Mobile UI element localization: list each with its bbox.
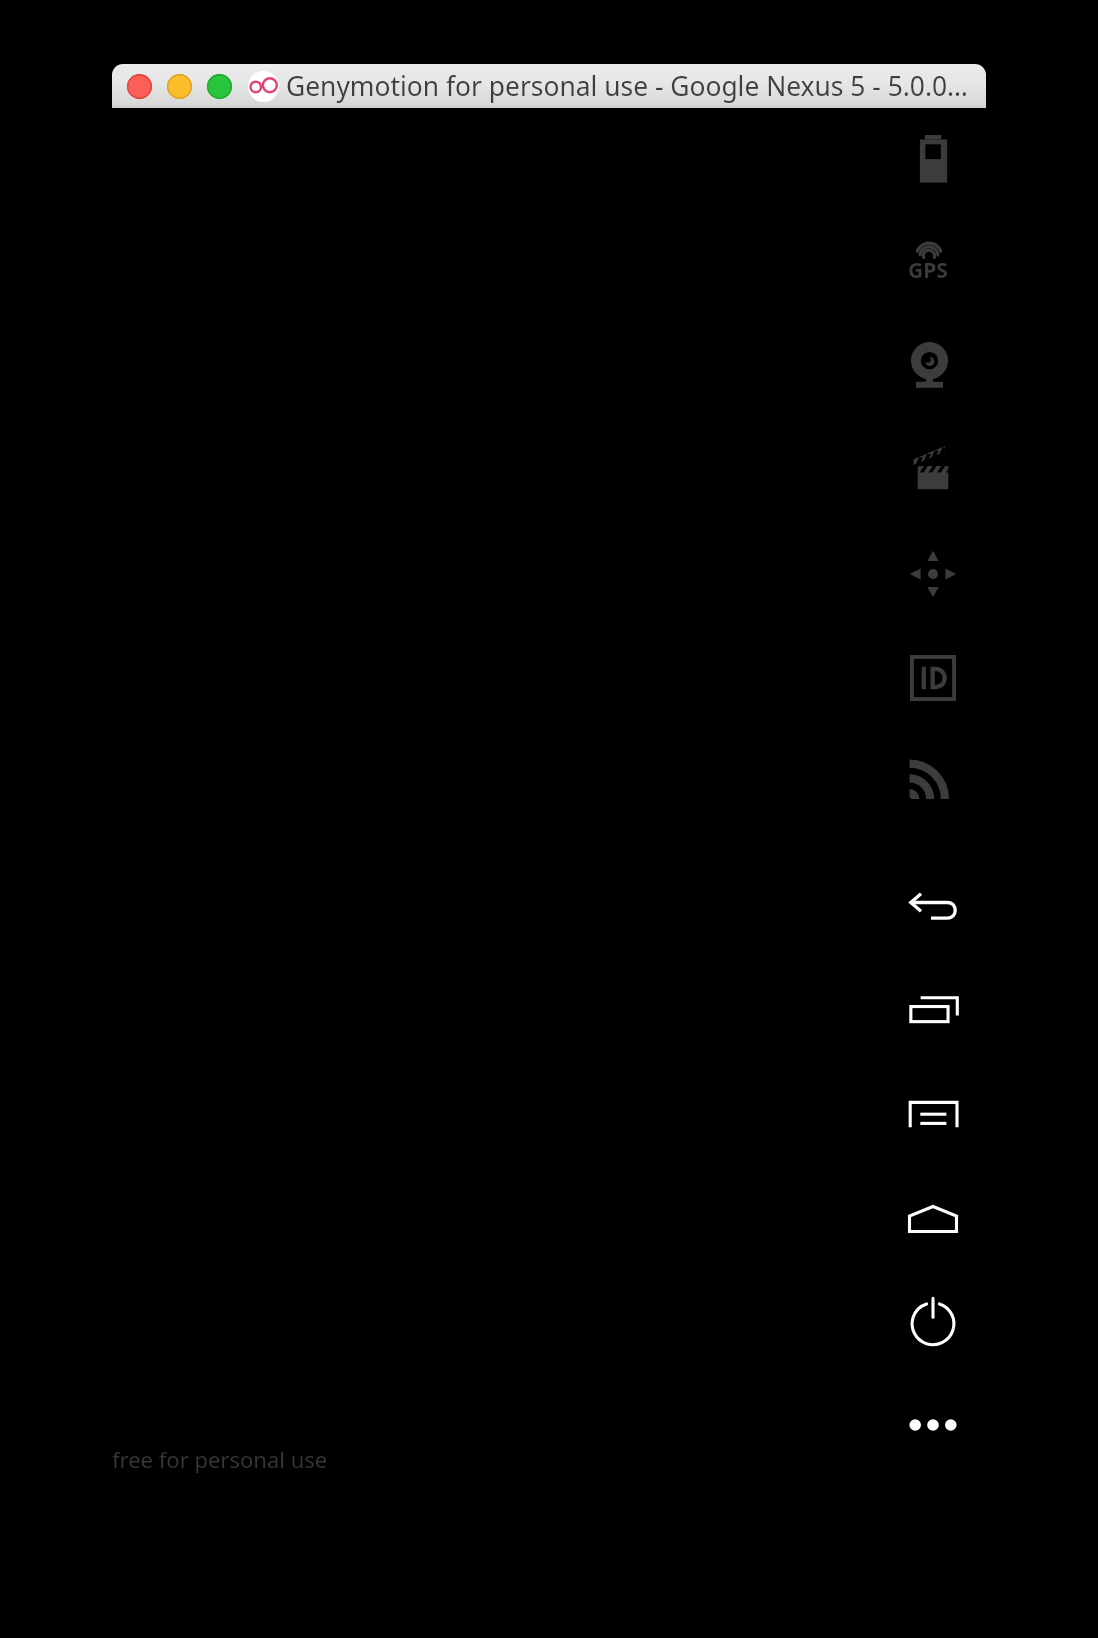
button[interactable]: Menu <box>893 1075 973 1155</box>
button[interactable]: Video recorder <box>893 427 973 507</box>
staticText: Genymotion for personal use - Google Nex… <box>286 68 968 104</box>
button[interactable]: Power <box>893 1283 973 1363</box>
button[interactable]: Identifiers <box>893 638 973 718</box>
button[interactable]: Battery <box>893 120 973 200</box>
staticText: free for personal use <box>112 1444 328 1474</box>
button[interactable]: Recent apps <box>893 970 973 1050</box>
button[interactable]: Back <box>893 866 973 946</box>
button[interactable]: Navigation pad <box>893 534 973 614</box>
button[interactable]: Home <box>893 1179 973 1259</box>
button[interactable]: GPS <box>893 221 973 301</box>
button[interactable]: Genymotion for personal use - Google Nex… <box>112 64 986 108</box>
button[interactable]: Network <box>893 740 973 820</box>
staticText: GPS <box>908 256 948 285</box>
button[interactable]: Camera <box>893 322 973 402</box>
button[interactable]: More options <box>893 1385 973 1465</box>
